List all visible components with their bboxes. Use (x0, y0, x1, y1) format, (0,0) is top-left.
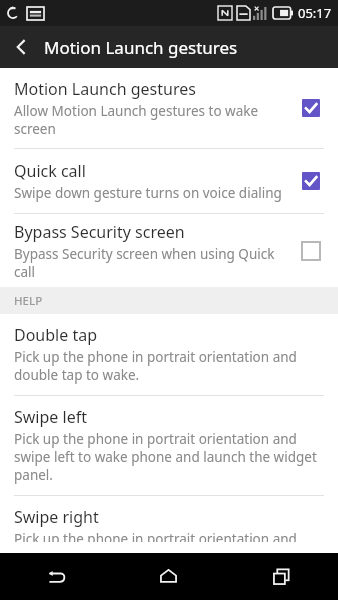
staticText: HELP (14, 293, 43, 309)
button[interactable]: Quick call (0, 149, 338, 213)
staticText: Motion Launch gestures (44, 36, 238, 59)
button[interactable]: Unchecked (296, 236, 326, 266)
staticText: 05:17 (298, 4, 332, 22)
staticText: Allow Motion Launch gestures to wake scr… (14, 102, 286, 138)
button[interactable]: Swipe right (0, 496, 338, 553)
staticText: Bypass Security screen (14, 221, 185, 243)
button[interactable]: Swipe left (0, 396, 338, 495)
staticText: Swipe left (14, 406, 87, 428)
staticText: Quick call (14, 160, 86, 182)
staticText: Pick up the phone in portrait orientatio… (14, 530, 326, 542)
staticText: Pick up the phone in portrait orientatio… (14, 430, 326, 484)
button[interactable]: Checked (296, 93, 326, 123)
button[interactable]: Back (0, 553, 112, 600)
button[interactable]: Motion Launch gestures (0, 68, 338, 148)
button[interactable]: Recent apps (225, 553, 338, 600)
staticText: Motion Launch gestures (14, 78, 196, 100)
button[interactable]: Home (112, 553, 225, 600)
staticText: Pick up the phone in portrait orientatio… (14, 348, 326, 384)
staticText: Double tap (14, 324, 97, 346)
staticText: Swipe down gesture turns on voice dialin… (14, 184, 282, 202)
button[interactable]: Back (0, 26, 42, 68)
button[interactable]: Bypass Security screen (0, 214, 338, 287)
staticText: Bypass Security screen when using Quick … (14, 245, 286, 281)
button[interactable]: Double tap (0, 314, 338, 395)
button[interactable]: Checked (296, 166, 326, 196)
staticText: Swipe right (14, 506, 99, 528)
